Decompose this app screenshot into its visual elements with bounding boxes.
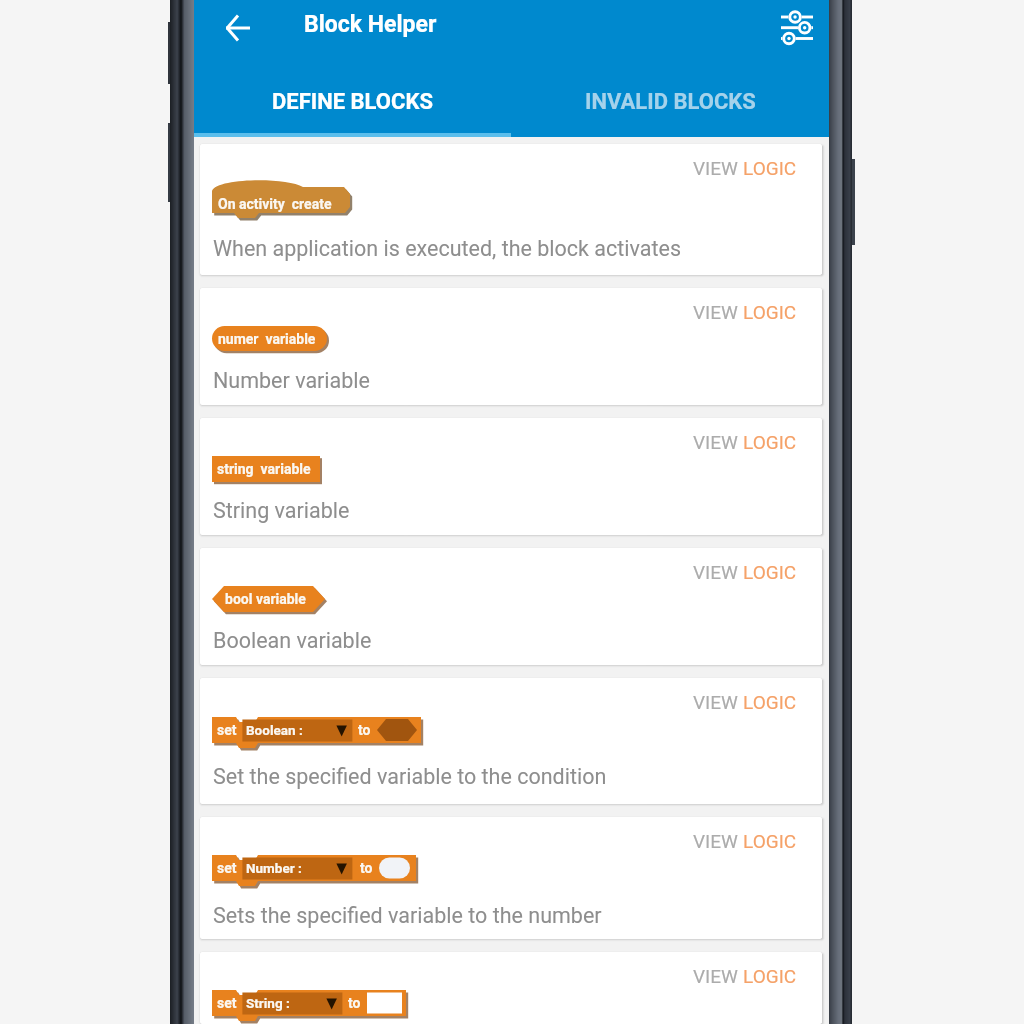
staticText: to bbox=[360, 860, 373, 876]
staticText: Boolean : bbox=[246, 722, 303, 738]
button[interactable]: VIEW bbox=[200, 418, 822, 535]
staticText: When application is executed, the block … bbox=[213, 236, 681, 261]
staticText: numer variable bbox=[218, 331, 316, 347]
staticText: Sets the specified variable to the numbe… bbox=[213, 903, 602, 928]
button[interactable]: VIEW bbox=[200, 288, 822, 405]
staticText: DEFINE BLOCKS bbox=[272, 89, 433, 115]
staticText: bool variable bbox=[225, 591, 306, 607]
button[interactable]: VIEW bbox=[200, 817, 822, 939]
button[interactable]: VIEW bbox=[687, 685, 803, 719]
staticText: to bbox=[358, 722, 371, 738]
button[interactable]: VIEW bbox=[687, 555, 803, 589]
staticText: LOGIC bbox=[743, 301, 797, 323]
staticText: LOGIC bbox=[743, 965, 797, 987]
button[interactable]: Filter settings bbox=[769, 0, 825, 56]
staticText: string variable bbox=[217, 461, 311, 477]
staticText: Set the specified variable to the condit… bbox=[213, 764, 607, 789]
staticText: Block Helper bbox=[304, 11, 437, 38]
button[interactable]: VIEW bbox=[687, 425, 803, 459]
button[interactable]: VIEW bbox=[687, 959, 803, 993]
staticText: String : bbox=[246, 995, 290, 1011]
staticText: LOGIC bbox=[743, 830, 797, 852]
staticText: Number : bbox=[246, 860, 302, 876]
staticText: Number variable bbox=[213, 368, 370, 393]
staticText: LOGIC bbox=[743, 561, 797, 583]
button[interactable]: VIEW bbox=[687, 151, 803, 185]
staticText: VIEW bbox=[693, 965, 743, 987]
button[interactable]: VIEW bbox=[200, 144, 822, 275]
button[interactable]: Back bbox=[210, 0, 266, 56]
staticText: VIEW bbox=[693, 691, 743, 713]
staticText: INVALID BLOCKS bbox=[585, 89, 756, 115]
staticText: to bbox=[348, 995, 361, 1011]
staticText: Boolean variable bbox=[213, 628, 372, 653]
button[interactable]: VIEW bbox=[200, 952, 822, 1024]
staticText: String variable bbox=[213, 498, 350, 523]
button[interactable]: VIEW bbox=[687, 295, 803, 329]
staticText: On activity create bbox=[218, 196, 332, 212]
staticText: set bbox=[217, 722, 237, 738]
staticText: LOGIC bbox=[743, 157, 797, 179]
staticText: VIEW bbox=[693, 157, 743, 179]
button[interactable]: VIEW bbox=[200, 678, 822, 804]
button[interactable]: INVALID BLOCKS bbox=[511, 57, 829, 137]
staticText: set bbox=[217, 860, 237, 876]
button[interactable]: VIEW bbox=[687, 824, 803, 858]
staticText: VIEW bbox=[693, 561, 743, 583]
staticText: set bbox=[217, 995, 237, 1011]
staticText: LOGIC bbox=[743, 691, 797, 713]
staticText: VIEW bbox=[693, 431, 743, 453]
button[interactable]: VIEW bbox=[200, 548, 822, 665]
staticText: VIEW bbox=[693, 830, 743, 852]
staticText: VIEW bbox=[693, 301, 743, 323]
staticText: LOGIC bbox=[743, 431, 797, 453]
button[interactable]: DEFINE BLOCKS bbox=[194, 57, 511, 137]
